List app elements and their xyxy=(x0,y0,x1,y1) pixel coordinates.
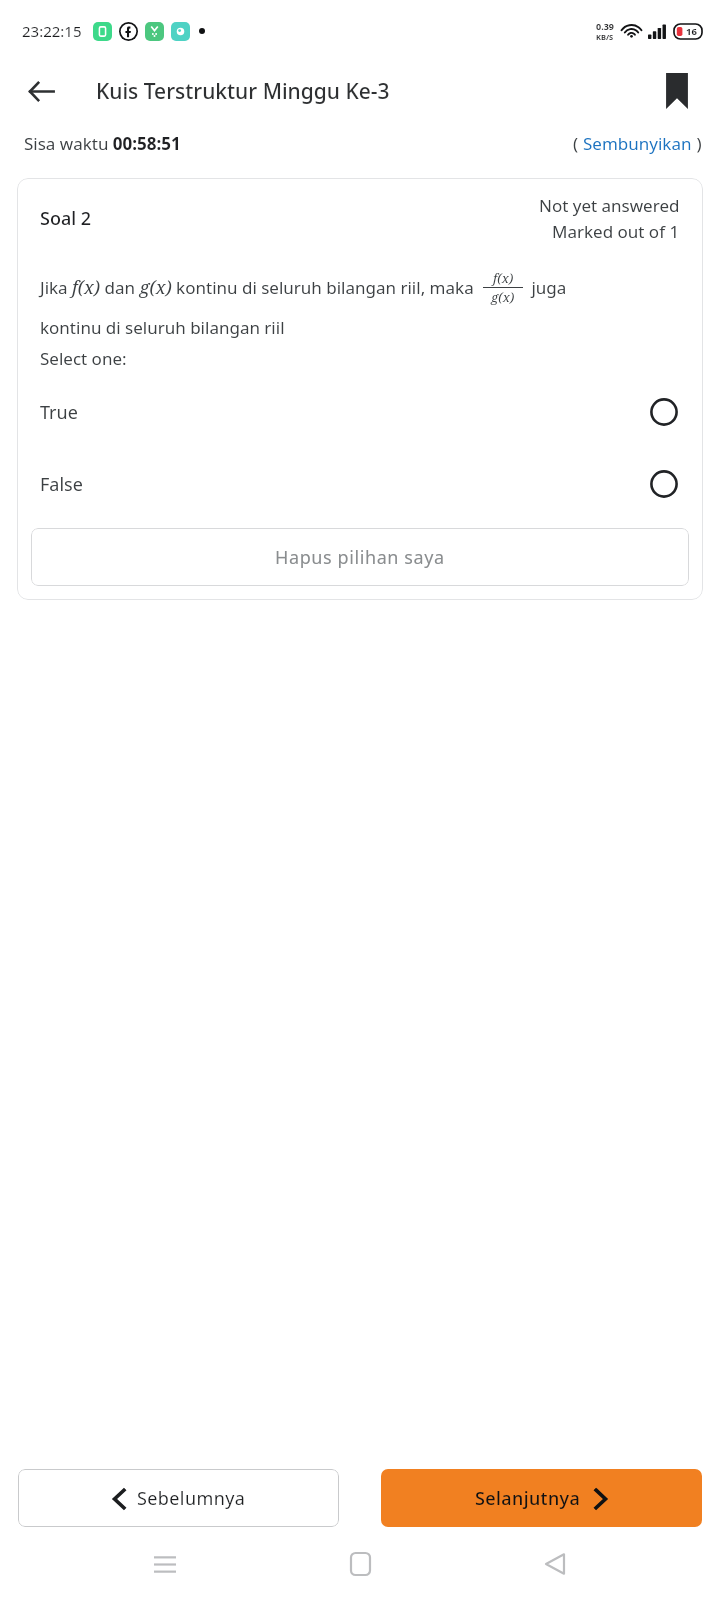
button[interactable]: Sebelumnya xyxy=(18,1469,339,1527)
staticText: Kuis Terstruktur Minggu Ke-3 xyxy=(96,77,390,106)
button[interactable]: Recent apps xyxy=(135,1534,195,1594)
staticText: True xyxy=(40,400,78,425)
staticText: False xyxy=(40,472,83,497)
staticText: Marked out of 1 xyxy=(552,220,680,243)
button[interactable]: Selanjutnya xyxy=(381,1469,702,1527)
button[interactable]: Bookmark xyxy=(652,66,702,116)
button[interactable]: Back xyxy=(14,64,68,118)
staticText: 0.39 xyxy=(596,20,614,32)
staticText: Soal 2 xyxy=(40,206,92,231)
staticText: juga xyxy=(527,276,567,299)
button[interactable]: True xyxy=(17,398,703,426)
staticText: kontinu di seluruh bilangan riil xyxy=(40,316,285,339)
staticText: Hapus pilihan saya xyxy=(275,545,445,570)
staticText: Jika f(x) dan g(x) kontinu di seluruh bi… xyxy=(40,275,479,300)
staticText: Select one: xyxy=(40,347,127,370)
staticText: Sembunyikan xyxy=(583,132,692,155)
staticText: g(x) xyxy=(491,288,515,306)
button[interactable]: ( xyxy=(573,132,702,155)
staticText: 23:22:15 xyxy=(22,21,82,41)
staticText: 16 xyxy=(686,25,697,38)
staticText: ( xyxy=(573,132,583,155)
staticText: KB/S xyxy=(596,32,614,42)
button[interactable]: Back xyxy=(525,1534,585,1594)
staticText: ) xyxy=(692,132,702,155)
staticText: Not yet answered xyxy=(539,194,680,217)
button[interactable]: Hapus pilihan saya xyxy=(31,528,689,586)
staticText: f(x) xyxy=(493,269,514,287)
staticText: Selanjutnya xyxy=(475,1486,581,1511)
staticText: Sisa waktu 00:58:51 xyxy=(24,132,181,155)
button[interactable]: False xyxy=(17,470,703,498)
button[interactable]: Home xyxy=(330,1534,390,1594)
staticText: Sebelumnya xyxy=(137,1486,246,1511)
